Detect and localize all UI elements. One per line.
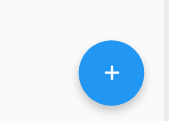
button[interactable]: Add	[78, 40, 144, 106]
